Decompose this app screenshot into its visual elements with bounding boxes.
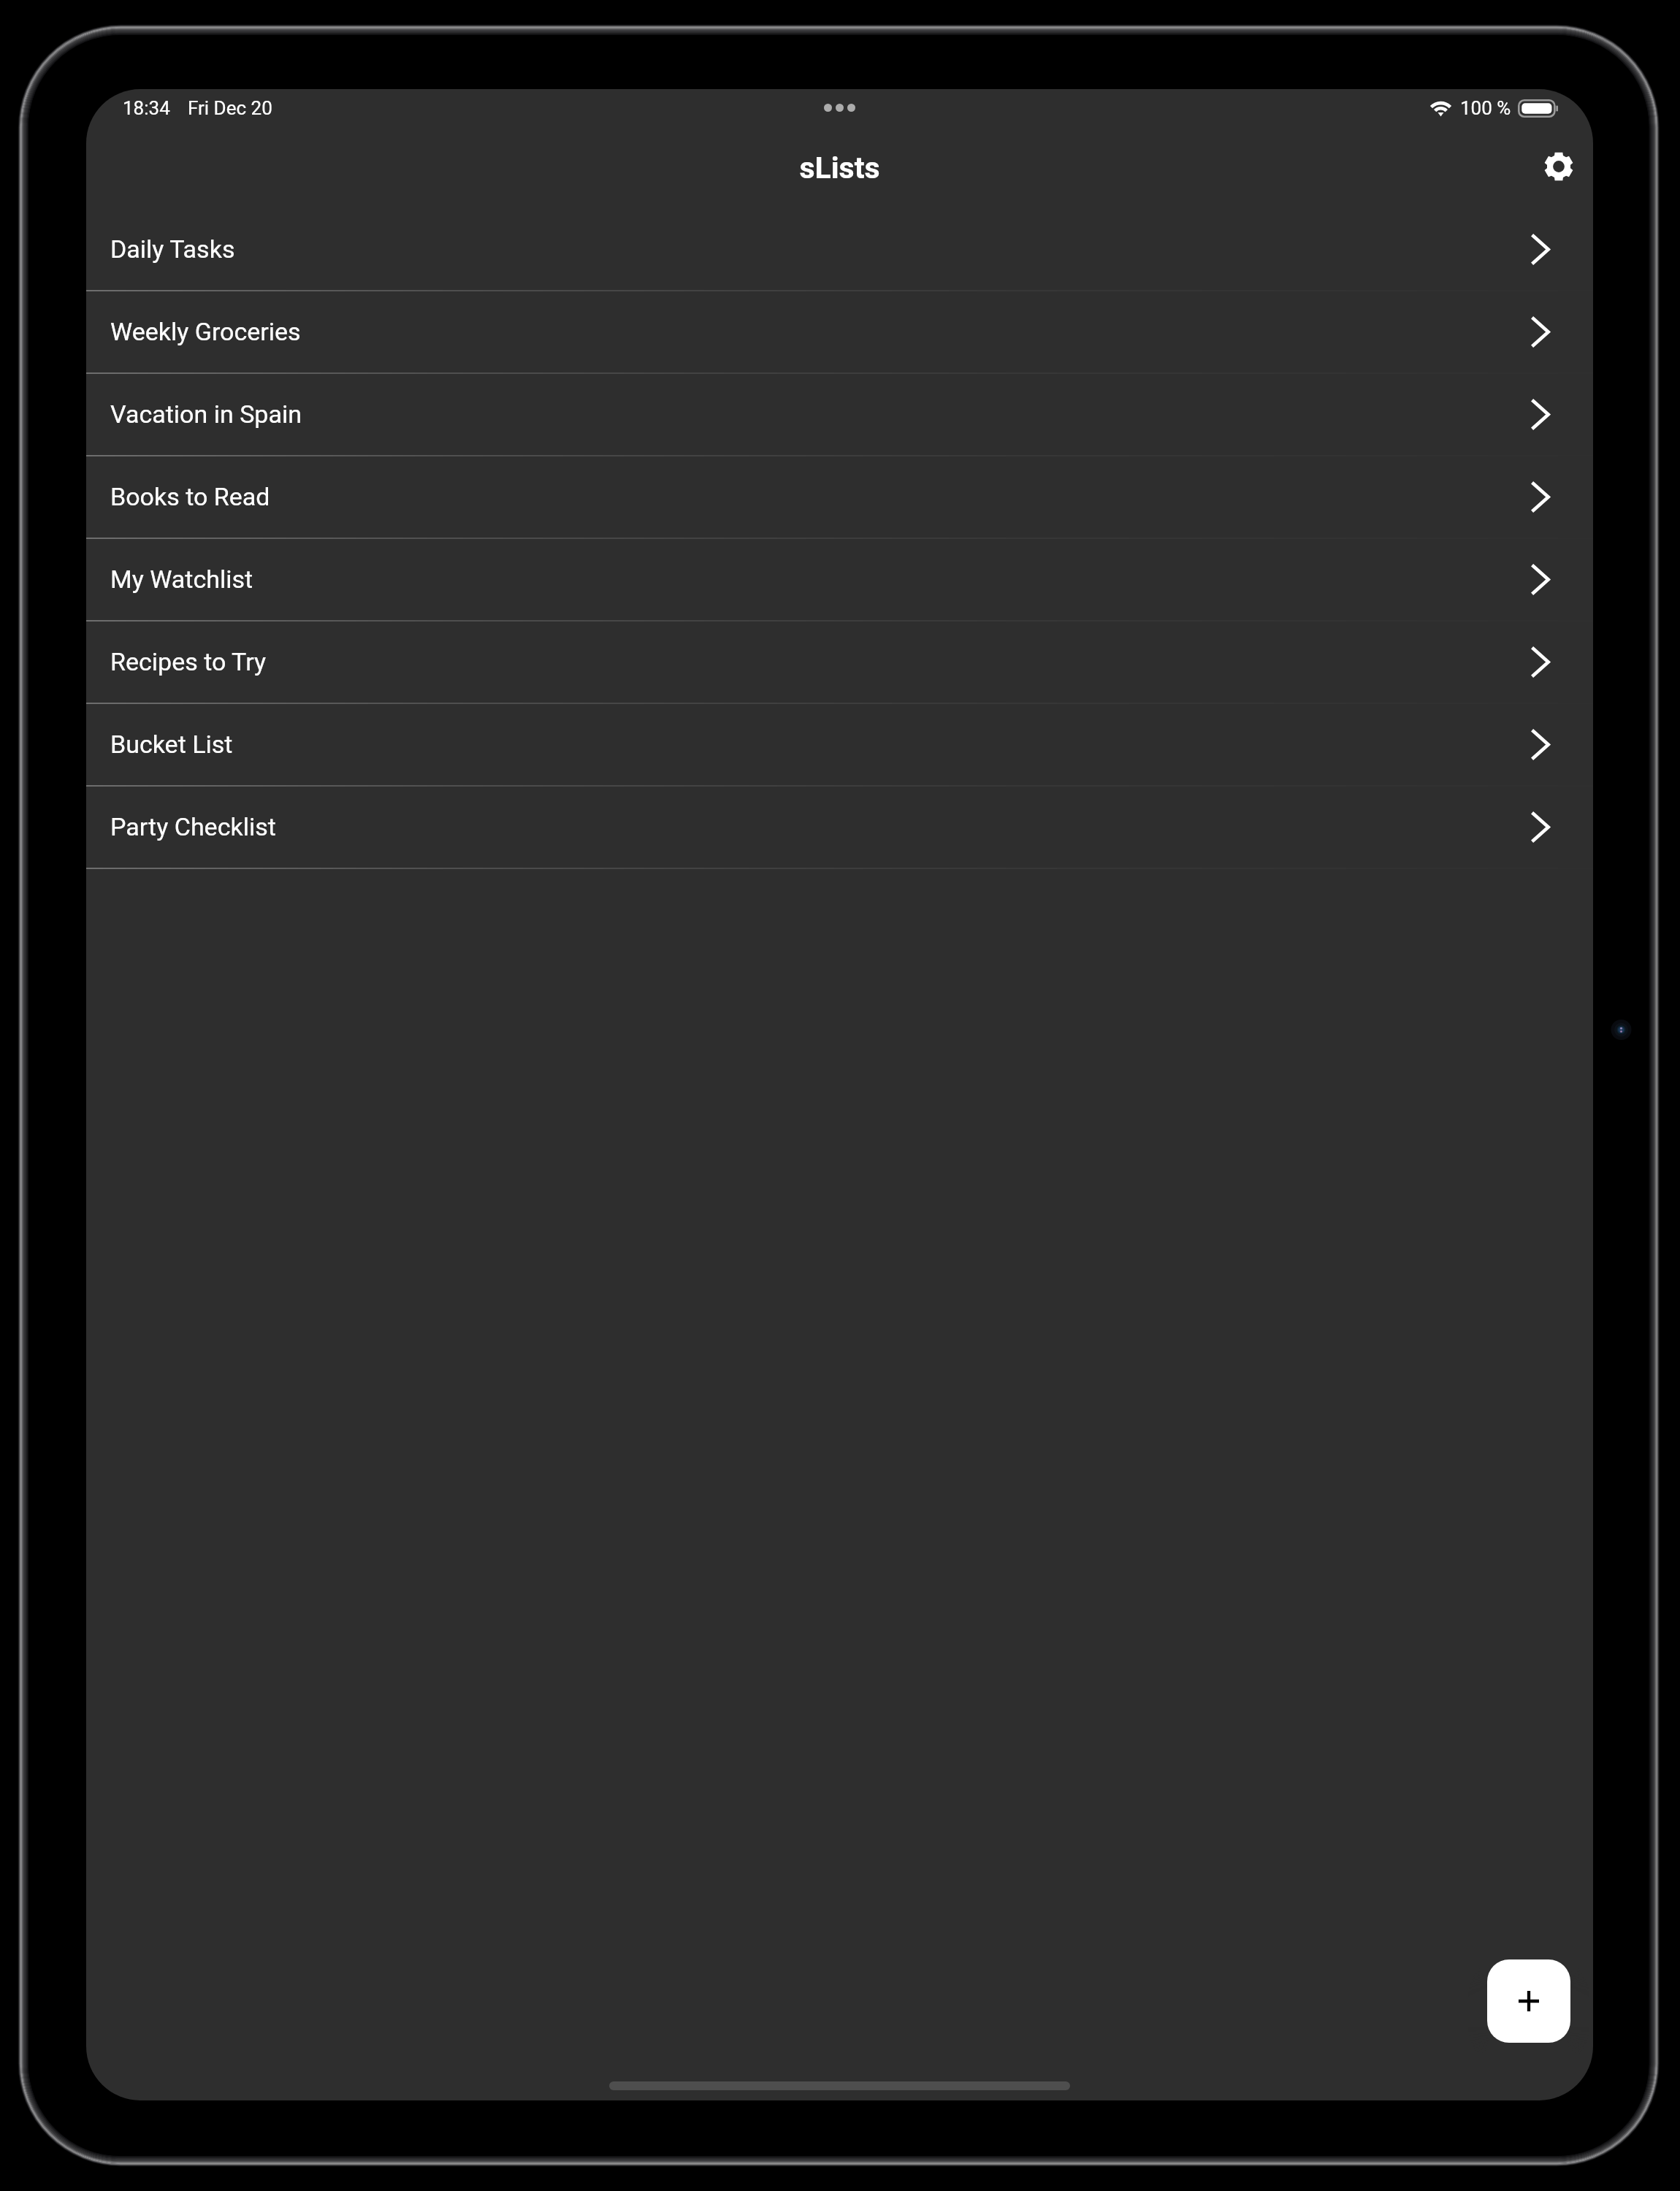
staticText: My Watchlist <box>110 565 253 594</box>
button[interactable]: Bucket List <box>86 704 1593 785</box>
button[interactable]: Recipes to Try <box>86 622 1593 703</box>
staticText: Weekly Groceries <box>110 317 301 346</box>
staticText: 100 % <box>1460 97 1511 119</box>
staticText: 18:34 <box>123 97 170 119</box>
staticText: Vacation in Spain <box>110 399 302 429</box>
button[interactable]: Party Checklist <box>86 787 1593 868</box>
button[interactable]: My Watchlist <box>86 539 1593 620</box>
staticText: Books to Read <box>110 482 270 511</box>
staticText: Daily Tasks <box>110 234 235 264</box>
button[interactable]: Weekly Groceries <box>86 291 1593 372</box>
staticText: Recipes to Try <box>110 647 267 676</box>
staticText: Party Checklist <box>110 812 276 841</box>
button[interactable]: Add list <box>1487 1959 1570 2043</box>
button[interactable]: Books to Read <box>86 456 1593 538</box>
button[interactable]: Daily Tasks <box>86 209 1593 290</box>
button[interactable]: Settings <box>1525 133 1592 200</box>
staticText: Fri Dec 20 <box>188 97 272 119</box>
button[interactable]: Vacation in Spain <box>86 374 1593 455</box>
staticText: sLists <box>799 150 880 186</box>
staticText: Bucket List <box>110 730 233 759</box>
